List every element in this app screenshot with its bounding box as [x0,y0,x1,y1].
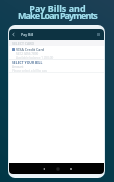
staticText: Make Loan Payments [18,9,97,21]
staticText: Amount [12,65,24,69]
button[interactable]: Back [39,164,48,173]
button[interactable]: Recent apps [53,164,62,173]
button[interactable]: Back [9,30,18,39]
staticText: VISA Credit Card [16,47,45,52]
staticText: Pay Bills and [29,2,86,14]
button[interactable]: Home [66,164,75,173]
staticText: Available balance 1,250.00 [16,56,54,60]
staticText: SELECT CARD [12,41,35,46]
staticText: Please select a bill to pay [12,69,47,73]
staticText: 5412 3456 7890 [16,52,39,56]
button[interactable]: More options [94,30,103,39]
staticText: SELECT YOUR BILL [12,60,43,65]
staticText: Pay Bill [21,32,34,37]
